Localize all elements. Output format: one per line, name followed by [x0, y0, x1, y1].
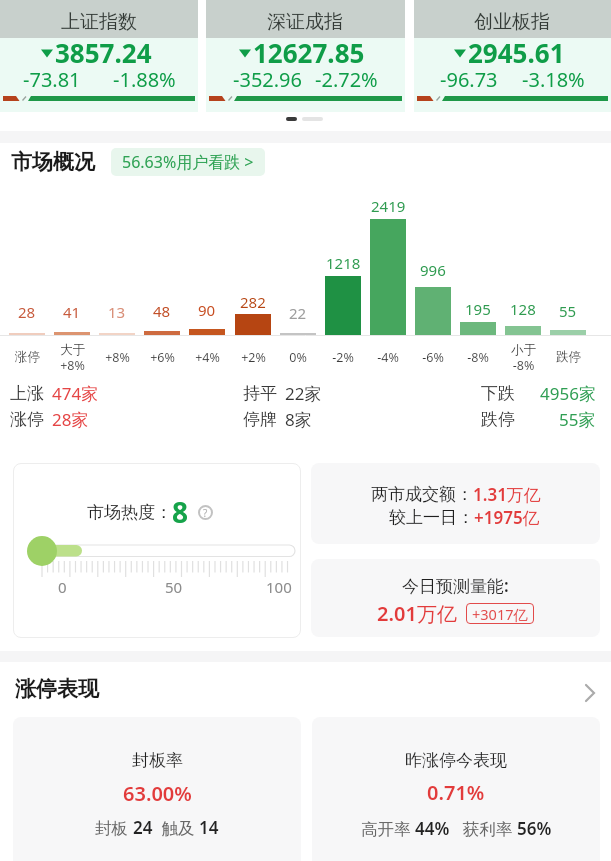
staticText: 涨停 [10, 409, 44, 430]
staticText: 获利率 [450, 817, 517, 840]
staticText: +8% [105, 349, 130, 366]
staticText: 4956家 [540, 382, 596, 405]
staticText: 停牌 [243, 409, 277, 430]
staticText: 100 [266, 577, 292, 597]
staticText: 涨停表现 [15, 676, 99, 702]
staticText: 市场概况 [11, 149, 95, 175]
staticText: 56.63%用户看跌 > [122, 151, 254, 173]
staticText: 44% [415, 817, 450, 840]
staticText: 上证指数 [61, 10, 137, 34]
staticText: 12627.85 [253, 35, 365, 70]
staticText: -73.81 [23, 66, 81, 93]
staticText: 持平 [243, 383, 277, 404]
staticText: 2.01万亿 [377, 600, 457, 627]
staticText: 封板率 [132, 750, 183, 771]
staticText: 上涨 [10, 383, 44, 404]
button[interactable] [13, 717, 301, 861]
staticText: 高开率 [361, 817, 415, 840]
staticText: +2% [241, 349, 266, 366]
staticText: 996 [420, 260, 446, 280]
staticText: -1.88% [113, 66, 176, 93]
staticText: 8家 [285, 408, 312, 431]
staticText: 50 [165, 577, 183, 597]
staticText: -2.72% [315, 66, 378, 93]
staticText: -3.18% [522, 66, 585, 93]
staticText: 2945.61 [468, 35, 565, 70]
staticText: +4% [195, 349, 220, 366]
staticText: 跌停 [481, 409, 515, 430]
staticText: 22 [289, 303, 307, 323]
staticText: 0 [58, 577, 67, 597]
staticText: -96.73 [440, 66, 498, 93]
staticText: 0.71% [427, 779, 485, 806]
staticText: 封板 [95, 816, 133, 839]
staticText: 较上一日： [389, 507, 474, 528]
staticText: 474家 [52, 382, 99, 405]
button[interactable]: 56.63%用户看跌 > [111, 148, 265, 176]
button[interactable] [206, 0, 405, 112]
staticText: 触及 [153, 816, 199, 839]
staticText: 14 [199, 816, 219, 839]
staticText: 28 [18, 302, 36, 322]
staticText: 22家 [285, 382, 322, 405]
staticText: 55家 [559, 408, 596, 431]
staticText: 13 [108, 302, 126, 322]
staticText: 28家 [52, 408, 89, 431]
staticText: 2419 [371, 196, 406, 216]
staticText: +3017亿 [472, 604, 528, 624]
staticText: 55 [559, 301, 577, 321]
staticText: 跌停 [556, 349, 581, 365]
staticText: 56% [517, 817, 552, 840]
button[interactable] [311, 463, 600, 544]
staticText: 下跌 [481, 383, 515, 404]
staticText: -352.96 [233, 66, 302, 93]
button[interactable] [311, 559, 600, 637]
staticText: 创业板指 [474, 10, 550, 34]
staticText: -6% [422, 349, 444, 366]
staticText: 8 [172, 493, 189, 531]
staticText: 0% [289, 349, 307, 366]
staticText: +1975亿 [474, 506, 540, 529]
button[interactable]: 涨停表现 [0, 668, 611, 710]
staticText: 深证成指 [267, 10, 343, 34]
staticText: 24 [133, 816, 153, 839]
staticText: 大于 +8% [60, 342, 85, 373]
staticText: 195 [465, 299, 491, 319]
staticText: 昨涨停今表现 [405, 750, 507, 771]
staticText: -4% [377, 349, 399, 366]
staticText: 128 [510, 299, 536, 319]
staticText: 63.00% [123, 780, 192, 807]
staticText: 3857.24 [55, 35, 152, 70]
staticText: 今日预测量能: [402, 574, 509, 597]
button[interactable] [312, 717, 600, 861]
staticText: 41 [63, 302, 81, 322]
staticText: ? [203, 506, 208, 520]
staticText: 48 [153, 301, 171, 321]
button[interactable] [414, 0, 611, 112]
button[interactable] [13, 463, 301, 638]
staticText: -2% [332, 349, 354, 366]
staticText: -8% [467, 349, 489, 366]
staticText: 1218 [326, 253, 361, 273]
button[interactable] [0, 0, 198, 112]
staticText: +6% [150, 349, 175, 366]
staticText: 涨停 [15, 349, 40, 365]
staticText: 小于 -8% [511, 342, 536, 373]
staticText: 282 [240, 292, 266, 312]
staticText: 两市成交额： [371, 484, 473, 505]
staticText: 市场热度： [87, 502, 172, 523]
staticText: 90 [198, 300, 216, 320]
staticText: 1.31万亿 [473, 483, 541, 506]
